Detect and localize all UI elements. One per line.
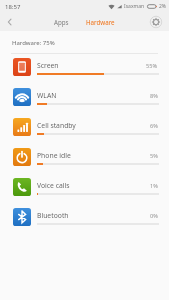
staticText: 6% — [150, 122, 158, 130]
staticText: Apps — [54, 18, 69, 26]
button[interactable]: Back — [2, 14, 18, 30]
button[interactable]: Bluetooth — [0, 204, 169, 234]
staticText: 1% — [150, 182, 158, 190]
staticText: Voice calls — [37, 181, 70, 190]
staticText: 18:57 — [5, 3, 21, 11]
staticText: Hardware — [86, 18, 115, 26]
staticText: Screen — [37, 61, 59, 70]
staticText: 8% — [150, 92, 158, 100]
button[interactable]: Hardware — [81, 15, 120, 29]
button[interactable]: WLAN — [0, 84, 169, 114]
staticText: 55% — [146, 62, 158, 70]
button[interactable]: Phone idle — [0, 144, 169, 174]
staticText: WLAN — [37, 91, 57, 100]
staticText: 0% — [150, 212, 158, 220]
button[interactable]: Battery history — [150, 16, 162, 28]
staticText: Phone idle — [37, 151, 71, 160]
staticText: Cell standby — [37, 121, 76, 130]
button[interactable]: Apps — [49, 15, 74, 29]
staticText: Bluetooth — [37, 211, 69, 220]
staticText: 5% — [150, 152, 158, 160]
staticText: 2% — [159, 3, 167, 10]
button[interactable]: Screen — [0, 54, 169, 84]
staticText: Isaxman — [124, 3, 145, 10]
staticText: Hardware: 75% — [12, 39, 55, 47]
button[interactable]: Cell standby — [0, 114, 169, 144]
button[interactable]: Voice calls — [0, 174, 169, 204]
